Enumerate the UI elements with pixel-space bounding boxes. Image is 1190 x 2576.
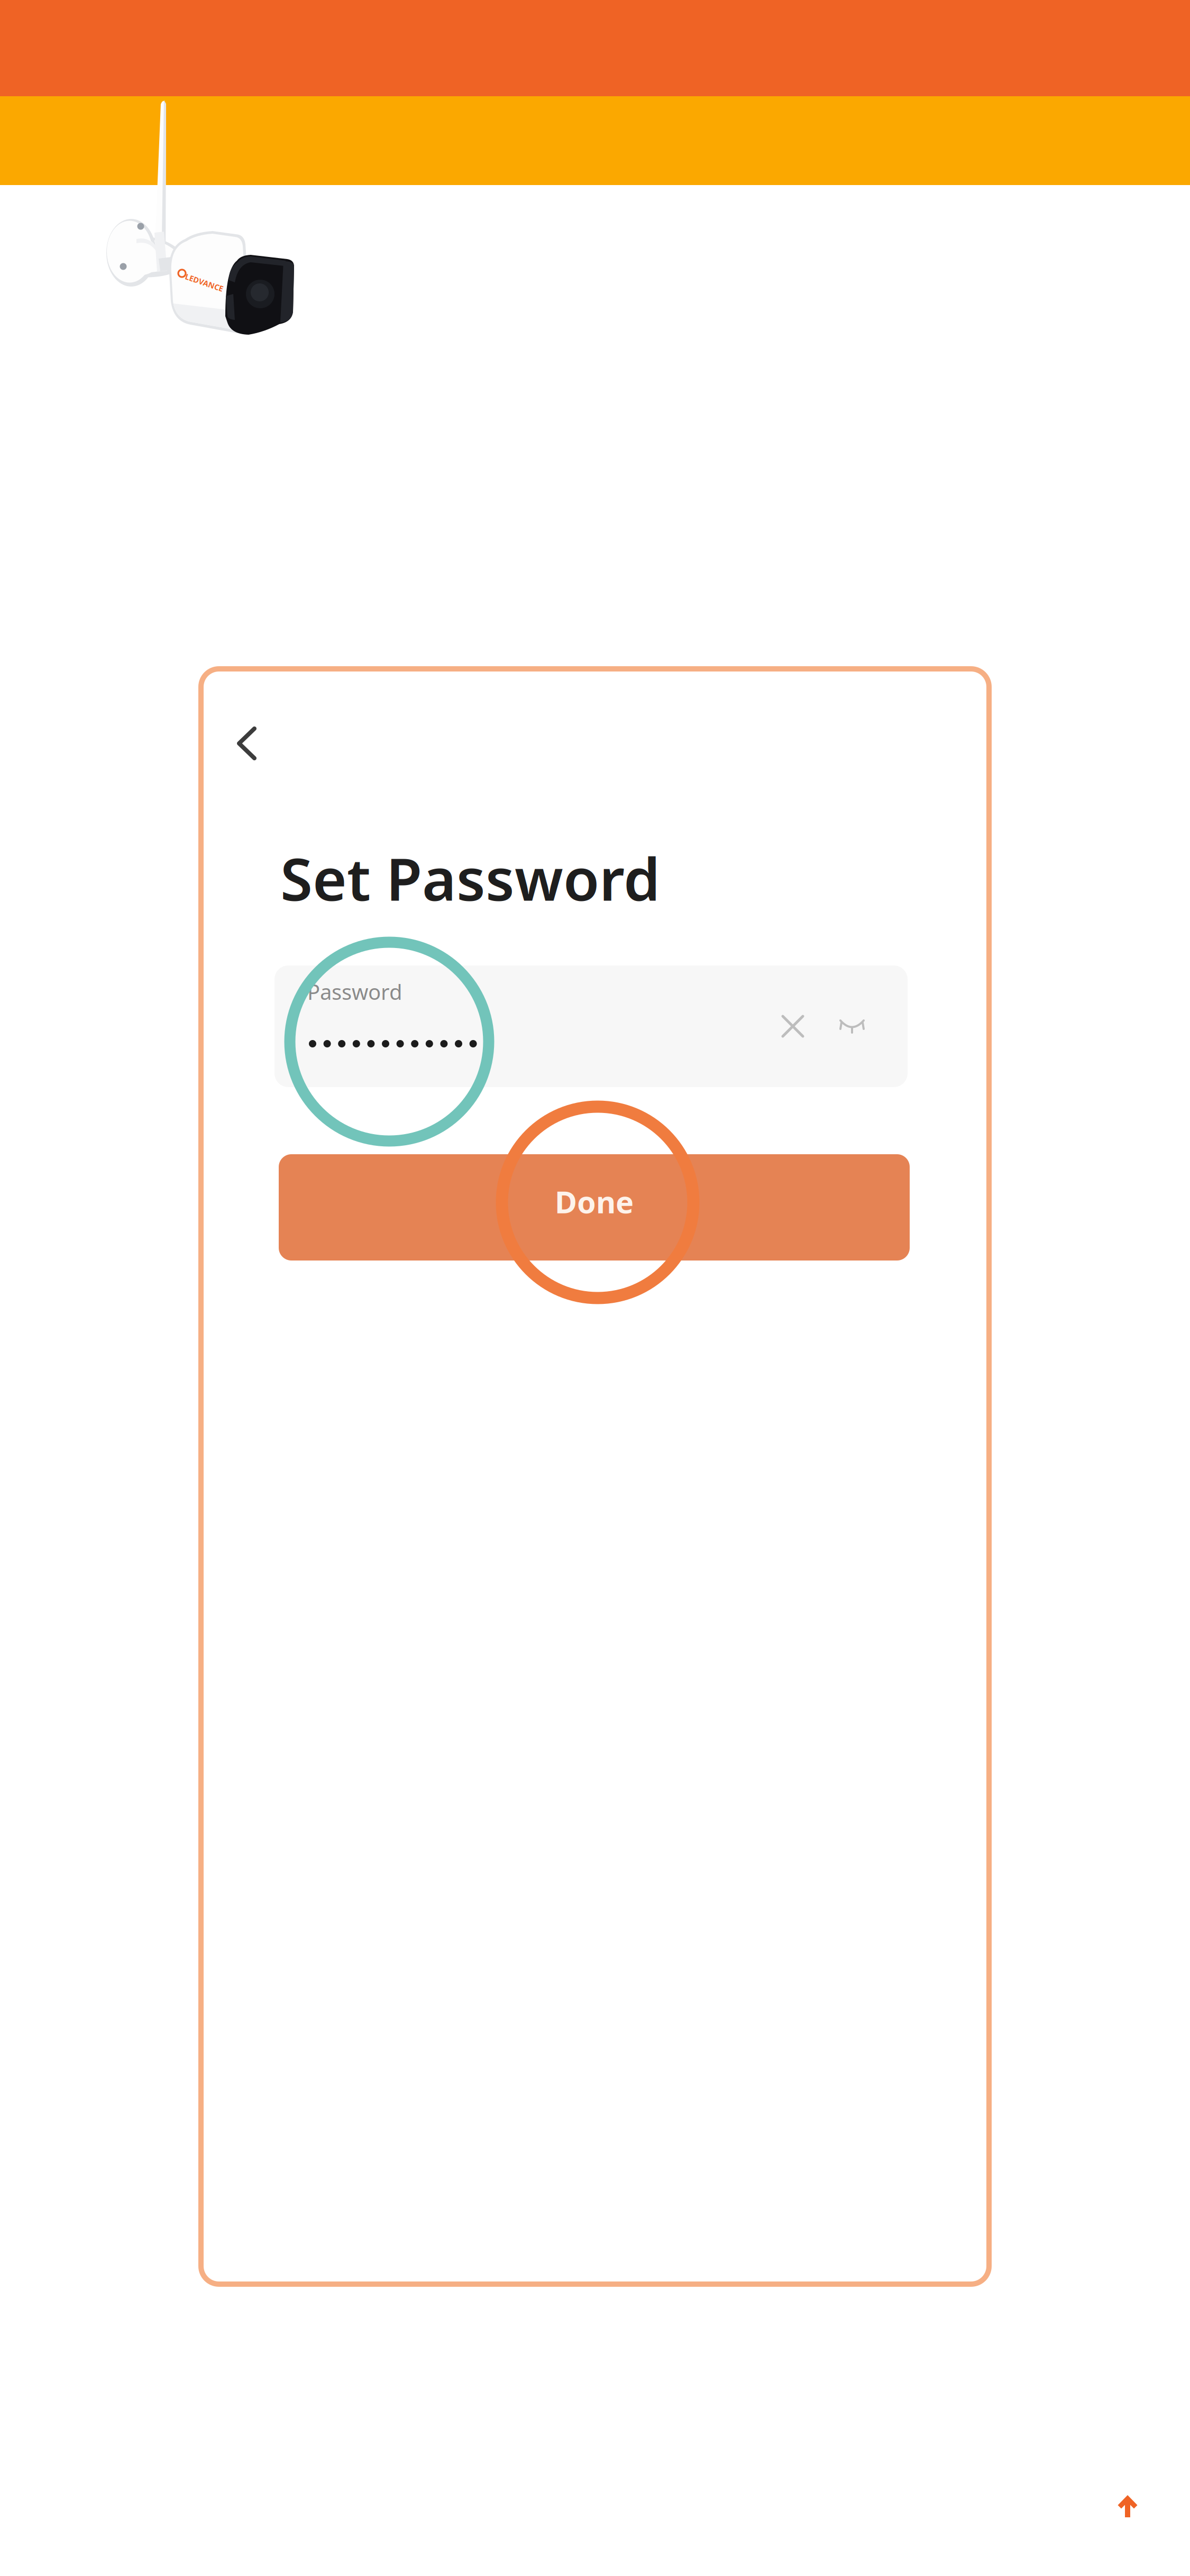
staticText: Password — [307, 978, 402, 1006]
button[interactable]: Done — [279, 1154, 910, 1261]
button[interactable]: Scroll to top — [1118, 2495, 1137, 2517]
button[interactable]: Clear text — [781, 1015, 804, 1038]
staticText: Done — [555, 1181, 634, 1222]
staticText: Set Password — [280, 839, 660, 917]
button[interactable]: Back — [221, 711, 273, 776]
staticText: LEDVANCE — [185, 276, 225, 286]
button[interactable]: Show password — [839, 1018, 865, 1035]
